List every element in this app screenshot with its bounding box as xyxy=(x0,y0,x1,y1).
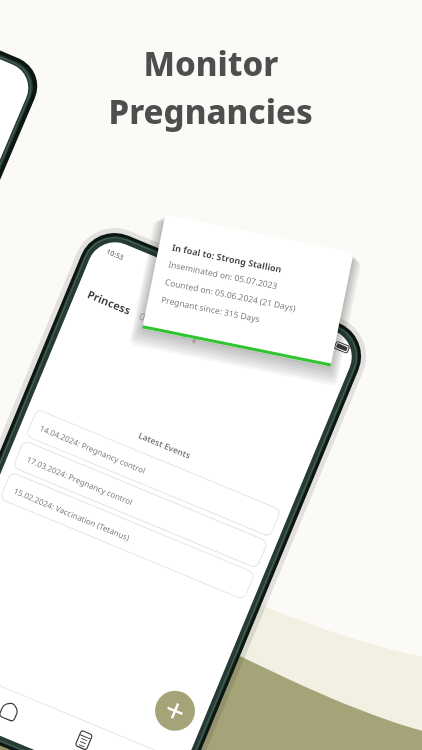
button[interactable]: Home xyxy=(322,632,356,666)
